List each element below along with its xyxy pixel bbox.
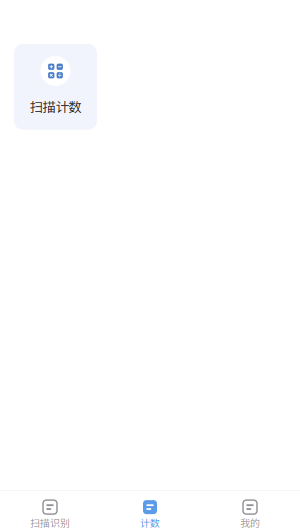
button[interactable]: 扫描识别 [0,489,100,532]
button[interactable]: 我的 [200,489,300,532]
button[interactable]: 计数 [100,489,200,532]
staticText: 我的 [240,515,260,530]
button[interactable]: 扫描计数 [14,44,97,130]
staticText: 扫描识别 [30,515,70,530]
staticText: 计数 [140,515,160,530]
staticText: 扫描计数 [29,96,81,116]
